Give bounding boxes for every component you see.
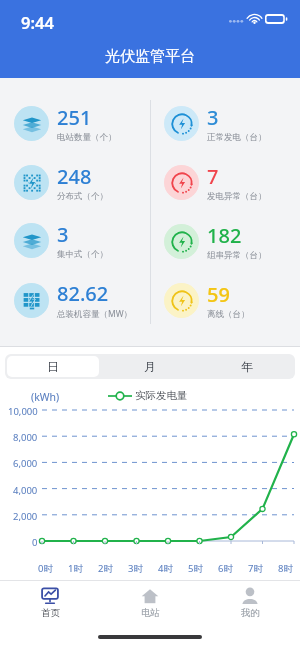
staticText: 组串异常（台） — [207, 250, 267, 261]
staticText: 6时 — [218, 562, 233, 575]
staticText: 59 — [207, 281, 230, 308]
staticText: 182 — [207, 222, 242, 249]
button[interactable]: Profile — [200, 581, 300, 625]
staticText: 3 — [207, 104, 219, 131]
button[interactable]: 月 — [103, 356, 196, 377]
staticText: 发电异常（台） — [207, 191, 267, 202]
staticText: 我的 — [241, 607, 260, 619]
button[interactable]: 82.62 — [14, 280, 150, 320]
button[interactable]: 日 — [7, 356, 99, 377]
staticText: 电站 — [141, 607, 160, 619]
staticText: 集中式（个） — [57, 249, 108, 260]
button[interactable]: 182 — [164, 222, 300, 261]
button[interactable]: Stations — [100, 581, 200, 625]
staticText: 9:44 — [21, 11, 54, 33]
staticText: 10,000 — [8, 405, 38, 418]
staticText: 2时 — [98, 562, 113, 575]
staticText: 实际发电量 — [135, 389, 188, 402]
staticText: 3 — [57, 221, 69, 248]
staticText: 年 — [241, 359, 253, 374]
button[interactable]: 59 — [164, 281, 300, 320]
staticText: 2,000 — [13, 510, 38, 523]
staticText: 0 — [32, 536, 38, 549]
staticText: 首页 — [41, 607, 60, 619]
staticText: 82.62 — [57, 280, 109, 307]
staticText: 月 — [144, 359, 156, 374]
staticText: 0时 — [38, 562, 53, 575]
staticText: 8时 — [278, 562, 293, 575]
staticText: 6,000 — [13, 457, 38, 470]
staticText: 4,000 — [13, 484, 38, 497]
staticText: 日 — [47, 359, 59, 374]
staticText: 251 — [57, 104, 92, 131]
staticText: 正常发电（台） — [207, 132, 267, 143]
staticText: 7 — [207, 163, 219, 190]
staticText: 248 — [57, 163, 92, 190]
button[interactable]: 年 — [200, 356, 293, 377]
staticText: 离线（台） — [207, 309, 250, 320]
button[interactable]: 7 — [164, 163, 300, 202]
staticText: 光伏监管平台 — [105, 47, 195, 66]
button[interactable]: 3 — [164, 104, 300, 143]
button[interactable]: Home — [0, 581, 100, 625]
staticText: 8,000 — [13, 431, 38, 444]
staticText: 3时 — [128, 562, 143, 575]
staticText: 5时 — [188, 562, 203, 575]
staticText: 4时 — [158, 562, 173, 575]
staticText: 7时 — [248, 562, 263, 575]
staticText: 分布式（个） — [57, 191, 108, 202]
staticText: 电站数量（个） — [57, 132, 117, 143]
staticText: 总装机容量（MW） — [57, 308, 133, 320]
button[interactable]: 251 — [14, 104, 150, 143]
staticText: 1时 — [68, 562, 83, 575]
button[interactable]: 248 — [14, 163, 150, 202]
staticText: (kWh) — [31, 390, 60, 404]
button[interactable]: 3 — [14, 221, 150, 260]
